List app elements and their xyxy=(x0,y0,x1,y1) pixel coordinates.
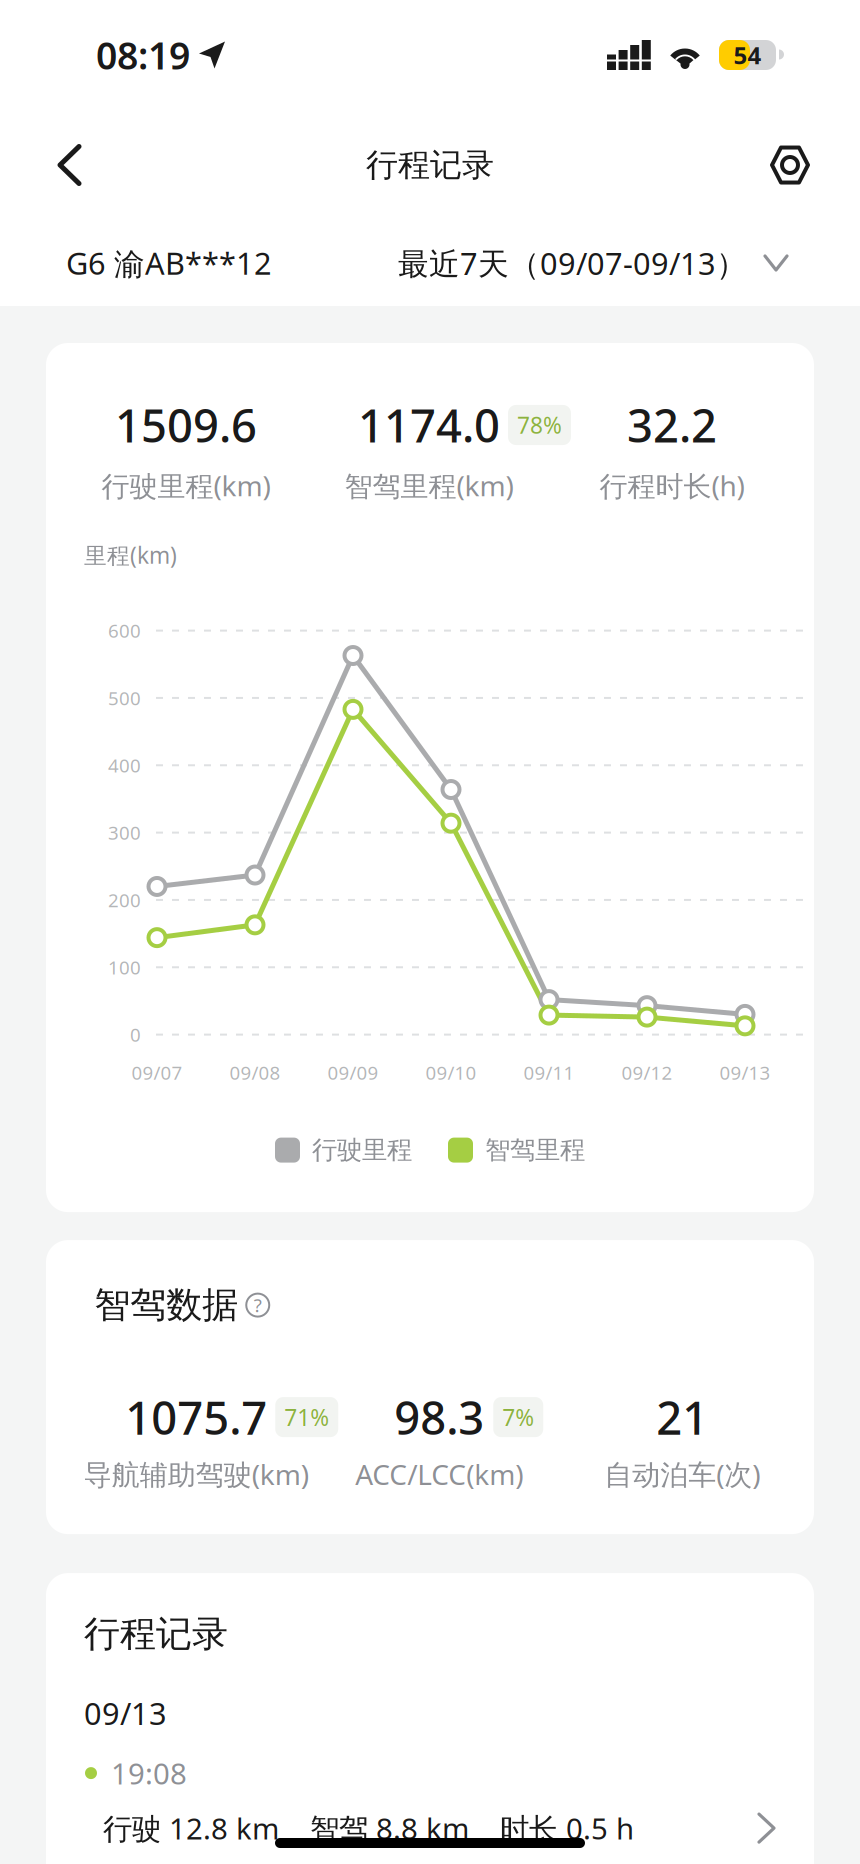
staticText: G6 渝AB***12 xyxy=(66,243,272,283)
button[interactable]: 最近7天（09/07-09/13） xyxy=(398,231,789,295)
button[interactable]: 返回 xyxy=(34,123,105,206)
staticText: 1174.0 xyxy=(358,395,500,455)
staticText: 0 xyxy=(130,1022,141,1047)
staticText: 09/11 xyxy=(523,1060,574,1085)
staticText: 500 xyxy=(108,685,141,710)
button[interactable]: 19:08 xyxy=(46,1734,814,1864)
staticText: 行程记录 xyxy=(366,145,494,185)
staticText: 78% xyxy=(517,410,562,440)
staticText: 09/08 xyxy=(229,1060,280,1085)
staticText: 400 xyxy=(108,753,141,778)
staticText: 71% xyxy=(284,1402,329,1432)
staticText: 300 xyxy=(108,820,141,845)
staticText: 200 xyxy=(108,887,141,912)
staticText: 智驾里程 xyxy=(485,1134,585,1166)
staticText: 里程(km) xyxy=(84,540,177,570)
staticText: 08:19 xyxy=(96,30,190,80)
staticText: ? xyxy=(254,1293,262,1317)
staticText: 09/12 xyxy=(621,1060,672,1085)
button[interactable]: 设置 xyxy=(750,125,830,205)
staticText: 行驶里程 xyxy=(312,1134,412,1166)
staticText: 最近7天（09/07-09/13） xyxy=(398,243,747,283)
staticText: 时长 0.5 h xyxy=(500,1809,634,1848)
staticText: 54 xyxy=(733,39,761,71)
staticText: 1509.6 xyxy=(115,395,257,455)
staticText: 98.3 xyxy=(394,1387,484,1447)
staticText: 19:08 xyxy=(111,1754,187,1793)
staticText: 7% xyxy=(502,1402,534,1432)
staticText: 09/10 xyxy=(425,1060,476,1085)
staticText: 32.2 xyxy=(627,395,717,455)
staticText: 09/13 xyxy=(84,1693,167,1733)
staticText: 1075.7 xyxy=(125,1387,267,1447)
staticText: 行驶 12.8 km xyxy=(103,1809,279,1848)
staticText: 自动泊车(次) xyxy=(604,1455,760,1493)
staticText: 导航辅助驾驶(km) xyxy=(84,1455,309,1493)
staticText: 智驾里程(km) xyxy=(344,467,513,504)
staticText: 行程时长(h) xyxy=(599,467,744,504)
staticText: 100 xyxy=(108,955,141,980)
staticText: 21 xyxy=(656,1387,708,1447)
staticText: 行程记录 xyxy=(84,1612,228,1656)
staticText: 行驶里程(km) xyxy=(101,467,270,504)
button[interactable]: G6 渝AB***12 xyxy=(66,231,272,295)
staticText: ACC/LCC(km) xyxy=(355,1455,523,1493)
staticText: 600 xyxy=(108,618,141,643)
staticText: 智驾 8.8 km xyxy=(310,1809,469,1848)
staticText: 09/13 xyxy=(719,1060,770,1085)
staticText: 智驾数据 xyxy=(94,1283,238,1327)
staticText: 09/07 xyxy=(131,1060,182,1085)
staticText: 09/09 xyxy=(327,1060,378,1085)
